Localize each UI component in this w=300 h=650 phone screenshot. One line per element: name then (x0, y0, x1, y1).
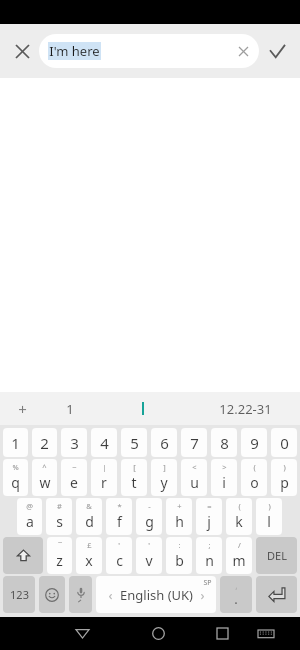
button[interactable]: ‹ (96, 576, 216, 613)
button[interactable]: 6 (151, 428, 177, 457)
button[interactable]: ( (241, 459, 267, 496)
staticText: 4 (100, 433, 109, 453)
staticText: £ (87, 540, 92, 550)
staticText: z (56, 551, 63, 570)
staticText: w (39, 473, 51, 492)
staticText: s (56, 512, 63, 531)
staticText: English (UK) (120, 586, 193, 604)
button[interactable]: = (196, 498, 222, 535)
button[interactable]: & (76, 498, 102, 535)
staticText: = (207, 501, 212, 511)
button[interactable]: ' (106, 537, 132, 574)
staticText: ) (283, 462, 286, 472)
staticText: ' (118, 540, 120, 550)
button[interactable]: 7 (181, 428, 207, 457)
staticText: > (222, 462, 227, 472)
staticText: 7 (190, 433, 199, 453)
staticText: # (57, 501, 62, 511)
staticText: k (235, 512, 243, 531)
button[interactable]: | (91, 459, 117, 496)
staticText: | (102, 462, 107, 472)
button[interactable]: 0 (271, 428, 297, 457)
button[interactable]: Voice input (69, 576, 92, 613)
button[interactable]: ~ (61, 459, 87, 496)
staticText: 6 (160, 433, 169, 453)
button[interactable]: ( (226, 498, 252, 535)
button[interactable]: 2 (32, 428, 57, 457)
staticText: p (280, 473, 289, 492)
staticText: 12.22-31 (219, 400, 272, 418)
button[interactable]: 5 (121, 428, 147, 457)
button[interactable]: 4 (91, 428, 117, 457)
button[interactable]: ' (136, 537, 162, 574)
button[interactable]: + (166, 498, 192, 535)
button[interactable]: 1 (45, 392, 95, 425)
staticText: u (190, 473, 199, 492)
button[interactable]: ) (271, 459, 297, 496)
button[interactable]: ¯ (47, 537, 72, 574)
button[interactable]: ^ (32, 459, 57, 496)
button[interactable]: 8 (211, 428, 237, 457)
staticText: 1 (66, 400, 74, 418)
button[interactable]: Confirm (259, 33, 295, 69)
staticText: j (207, 512, 211, 531)
staticText: ; (208, 540, 211, 550)
staticText: : (178, 540, 181, 550)
button[interactable]: Back (62, 617, 102, 650)
button[interactable]: 12.22-31 (190, 392, 300, 425)
staticText: l (267, 512, 271, 531)
button[interactable]: [ (121, 459, 147, 496)
button[interactable]: , (220, 576, 252, 613)
button[interactable]: # (46, 498, 72, 535)
staticText: e (70, 473, 78, 492)
button[interactable]: 3 (61, 428, 87, 457)
staticText: ] (163, 462, 166, 472)
staticText: 123 (10, 587, 29, 602)
staticText: r (101, 473, 107, 492)
button[interactable]: 9 (241, 428, 267, 457)
staticText: / (238, 540, 241, 550)
button[interactable]: 123 (3, 576, 35, 613)
staticText: a (26, 512, 34, 531)
button[interactable]: £ (76, 537, 102, 574)
button[interactable]: Enter (256, 576, 297, 613)
staticText: 1 (11, 433, 20, 453)
staticText: ~ (72, 462, 77, 472)
button[interactable]: I'm here (39, 34, 259, 68)
button[interactable]: Delete (256, 537, 297, 574)
button[interactable]: < (181, 459, 207, 496)
staticText: ) (268, 501, 271, 511)
staticText: - (148, 501, 151, 511)
button[interactable]: Close (5, 34, 39, 68)
button[interactable]: / (226, 537, 252, 574)
staticText: b (175, 551, 184, 570)
button[interactable]: > (211, 459, 237, 496)
button[interactable]: * (106, 498, 132, 535)
button[interactable]: - (136, 498, 162, 535)
staticText: ^ (42, 462, 47, 472)
button[interactable]: Hide keyboard (248, 617, 284, 650)
button[interactable]: Emoji (39, 576, 65, 613)
button[interactable] (95, 392, 190, 425)
staticText: % (12, 462, 19, 472)
staticText: ( (238, 501, 241, 511)
button[interactable]: Shift (3, 537, 43, 574)
button[interactable]: % (3, 459, 28, 496)
button[interactable]: + (0, 392, 45, 425)
button[interactable]: ; (196, 537, 222, 574)
staticText: [ (133, 462, 136, 472)
staticText: 2 (40, 433, 49, 453)
button[interactable]: ] (151, 459, 177, 496)
staticText: t (131, 473, 137, 492)
button[interactable]: Clear text (230, 38, 256, 64)
button[interactable]: 1 (3, 428, 28, 457)
button[interactable]: ) (256, 498, 282, 535)
button[interactable]: : (166, 537, 192, 574)
staticText: d (85, 512, 94, 531)
staticText: + (177, 501, 182, 511)
button[interactable]: Home (138, 617, 178, 650)
staticText: ‹ (108, 586, 113, 604)
button[interactable]: Recent apps (202, 617, 242, 650)
staticText: & (86, 501, 92, 511)
button[interactable]: @ (17, 498, 42, 535)
